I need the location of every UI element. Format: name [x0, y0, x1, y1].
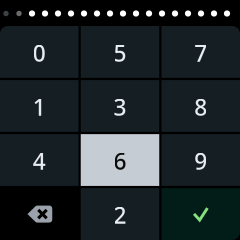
- button[interactable]: 9: [161, 134, 240, 186]
- button[interactable]: 6: [81, 134, 159, 186]
- button[interactable]: 1: [0, 80, 78, 132]
- button[interactable]: 2: [81, 188, 159, 240]
- button[interactable]: Delete: [0, 188, 78, 240]
- button[interactable]: 0: [0, 26, 78, 78]
- staticText: 3: [113, 92, 126, 122]
- staticText: 6: [113, 146, 126, 176]
- staticText: 4: [33, 146, 46, 176]
- staticText: 9: [194, 146, 207, 176]
- staticText: 7: [194, 38, 207, 68]
- staticText: 1: [33, 92, 46, 122]
- button[interactable]: 5: [81, 26, 159, 78]
- button[interactable]: Confirm: [161, 188, 240, 240]
- button[interactable]: 8: [161, 80, 240, 132]
- button[interactable]: 3: [81, 80, 159, 132]
- staticText: 2: [113, 200, 126, 230]
- staticText: 5: [113, 38, 126, 68]
- staticText: 0: [33, 38, 46, 68]
- button[interactable]: 4: [0, 134, 78, 186]
- staticText: 8: [194, 92, 207, 122]
- button[interactable]: 7: [161, 26, 240, 78]
